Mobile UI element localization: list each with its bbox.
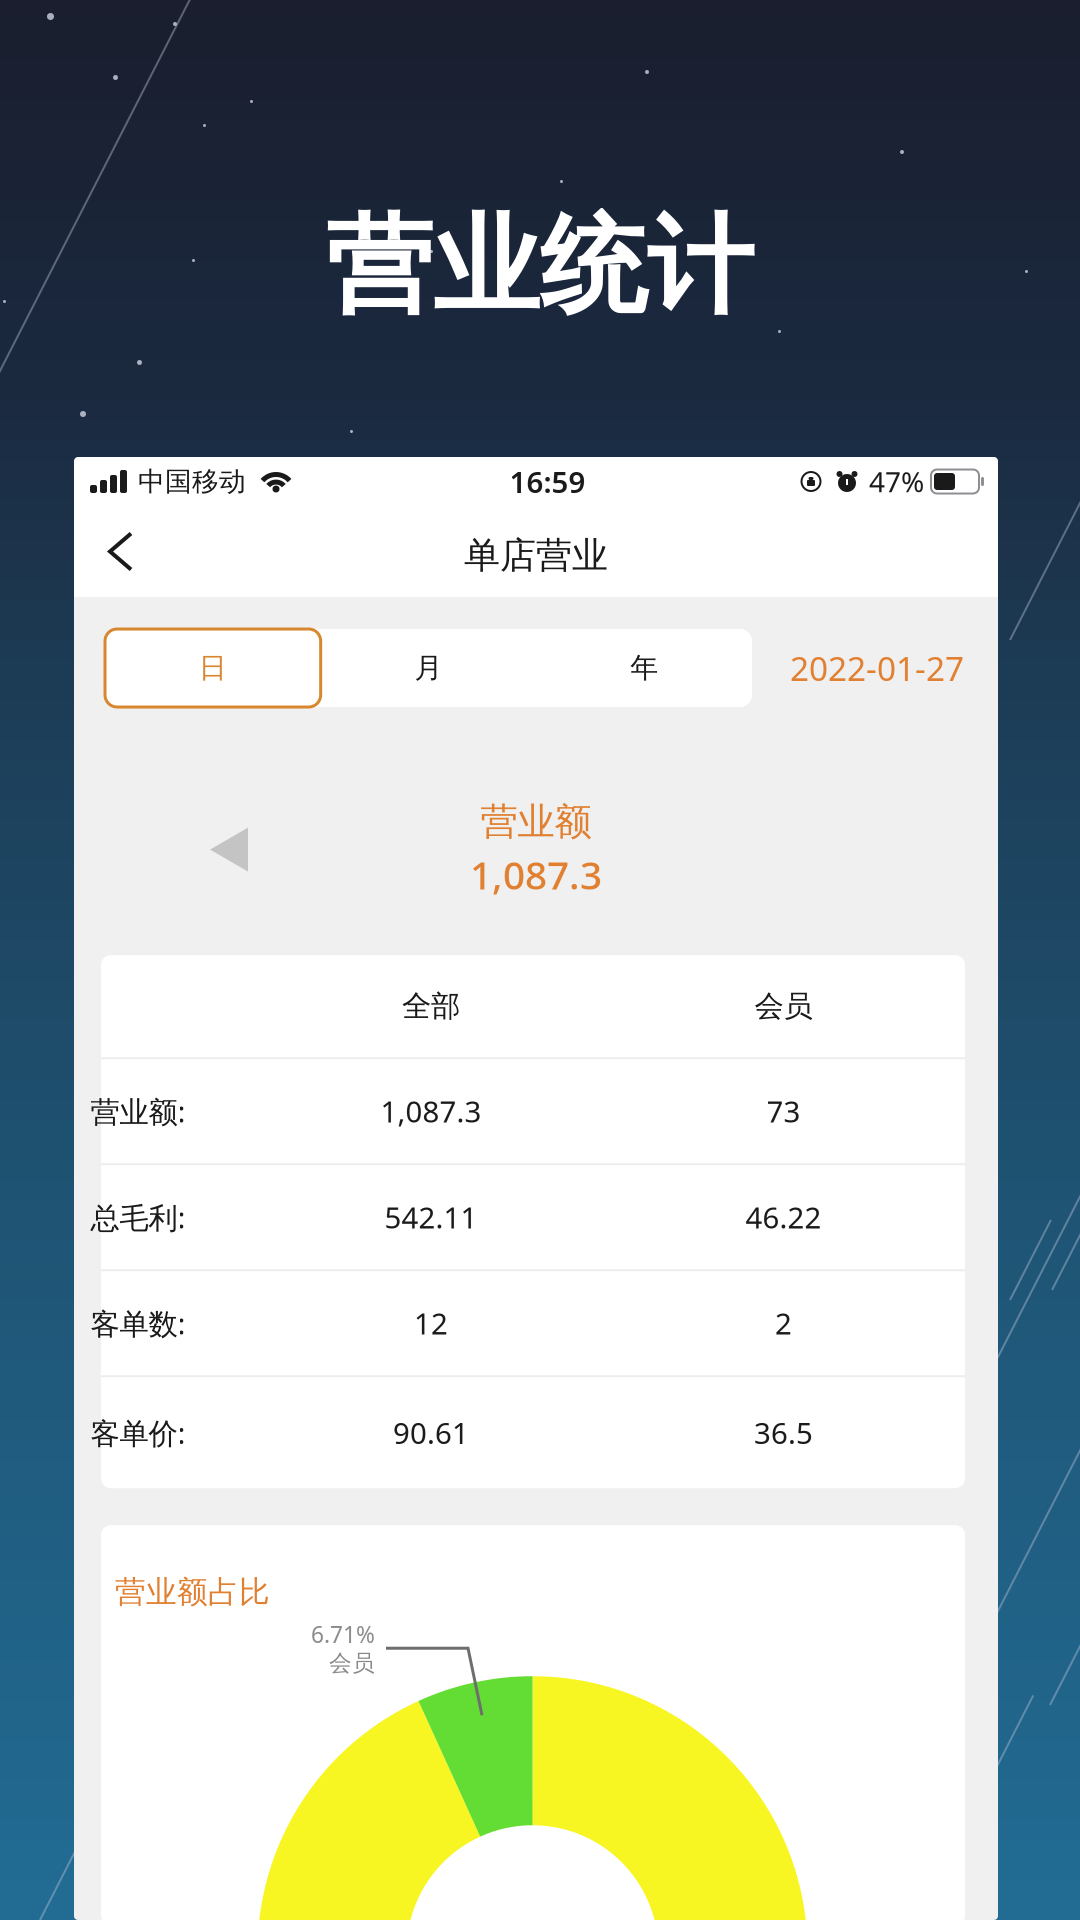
staticText: 6.71% bbox=[311, 1619, 375, 1649]
staticText: 单店营业 bbox=[464, 533, 608, 578]
staticText: 营业额 bbox=[480, 799, 591, 845]
staticText: 营业额占比 bbox=[115, 1573, 270, 1611]
staticText: 90.61 bbox=[393, 1413, 469, 1452]
staticText: 16:59 bbox=[509, 462, 585, 501]
staticText: 全部 bbox=[402, 988, 460, 1024]
staticText: 营业额: bbox=[90, 1092, 185, 1131]
staticText: 总毛利: bbox=[90, 1198, 185, 1237]
staticText: 会员 bbox=[329, 1649, 375, 1677]
button[interactable]: Previous day bbox=[190, 808, 268, 892]
staticText: 营业统计 bbox=[326, 201, 754, 332]
button[interactable]: Back bbox=[74, 515, 155, 595]
button[interactable]: 2022-01-27 bbox=[790, 646, 964, 690]
staticText: 月 bbox=[414, 651, 442, 685]
staticText: 36.5 bbox=[754, 1413, 813, 1452]
staticText: 542.11 bbox=[384, 1198, 477, 1237]
staticText: 73 bbox=[766, 1092, 800, 1131]
button[interactable]: 年 bbox=[536, 629, 752, 707]
staticText: 46.22 bbox=[745, 1198, 821, 1237]
staticText: 1,087.3 bbox=[380, 1092, 481, 1131]
staticText: 年 bbox=[630, 651, 658, 685]
staticText: 2 bbox=[775, 1304, 792, 1343]
staticText: 客单价: bbox=[90, 1413, 185, 1452]
staticText: 日 bbox=[199, 651, 227, 685]
staticText: 1,087.3 bbox=[470, 849, 602, 900]
staticText: 2022-01-27 bbox=[790, 646, 964, 690]
button[interactable]: 日 bbox=[105, 629, 321, 707]
button[interactable]: 月 bbox=[321, 629, 536, 707]
staticText: 47% bbox=[869, 463, 924, 500]
staticText: 客单数: bbox=[90, 1304, 185, 1343]
staticText: 会员 bbox=[754, 988, 812, 1024]
staticText: 12 bbox=[414, 1304, 448, 1343]
staticText: 中国移动 bbox=[138, 465, 246, 498]
